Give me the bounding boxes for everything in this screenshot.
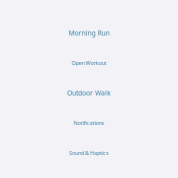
staticText: Open Workout <box>71 59 106 67</box>
staticText: Sound & Haptics <box>69 149 109 157</box>
staticText: Notifications <box>73 119 104 127</box>
staticText: Morning Run <box>68 29 109 37</box>
staticText: Outdoor Walk <box>67 89 111 97</box>
